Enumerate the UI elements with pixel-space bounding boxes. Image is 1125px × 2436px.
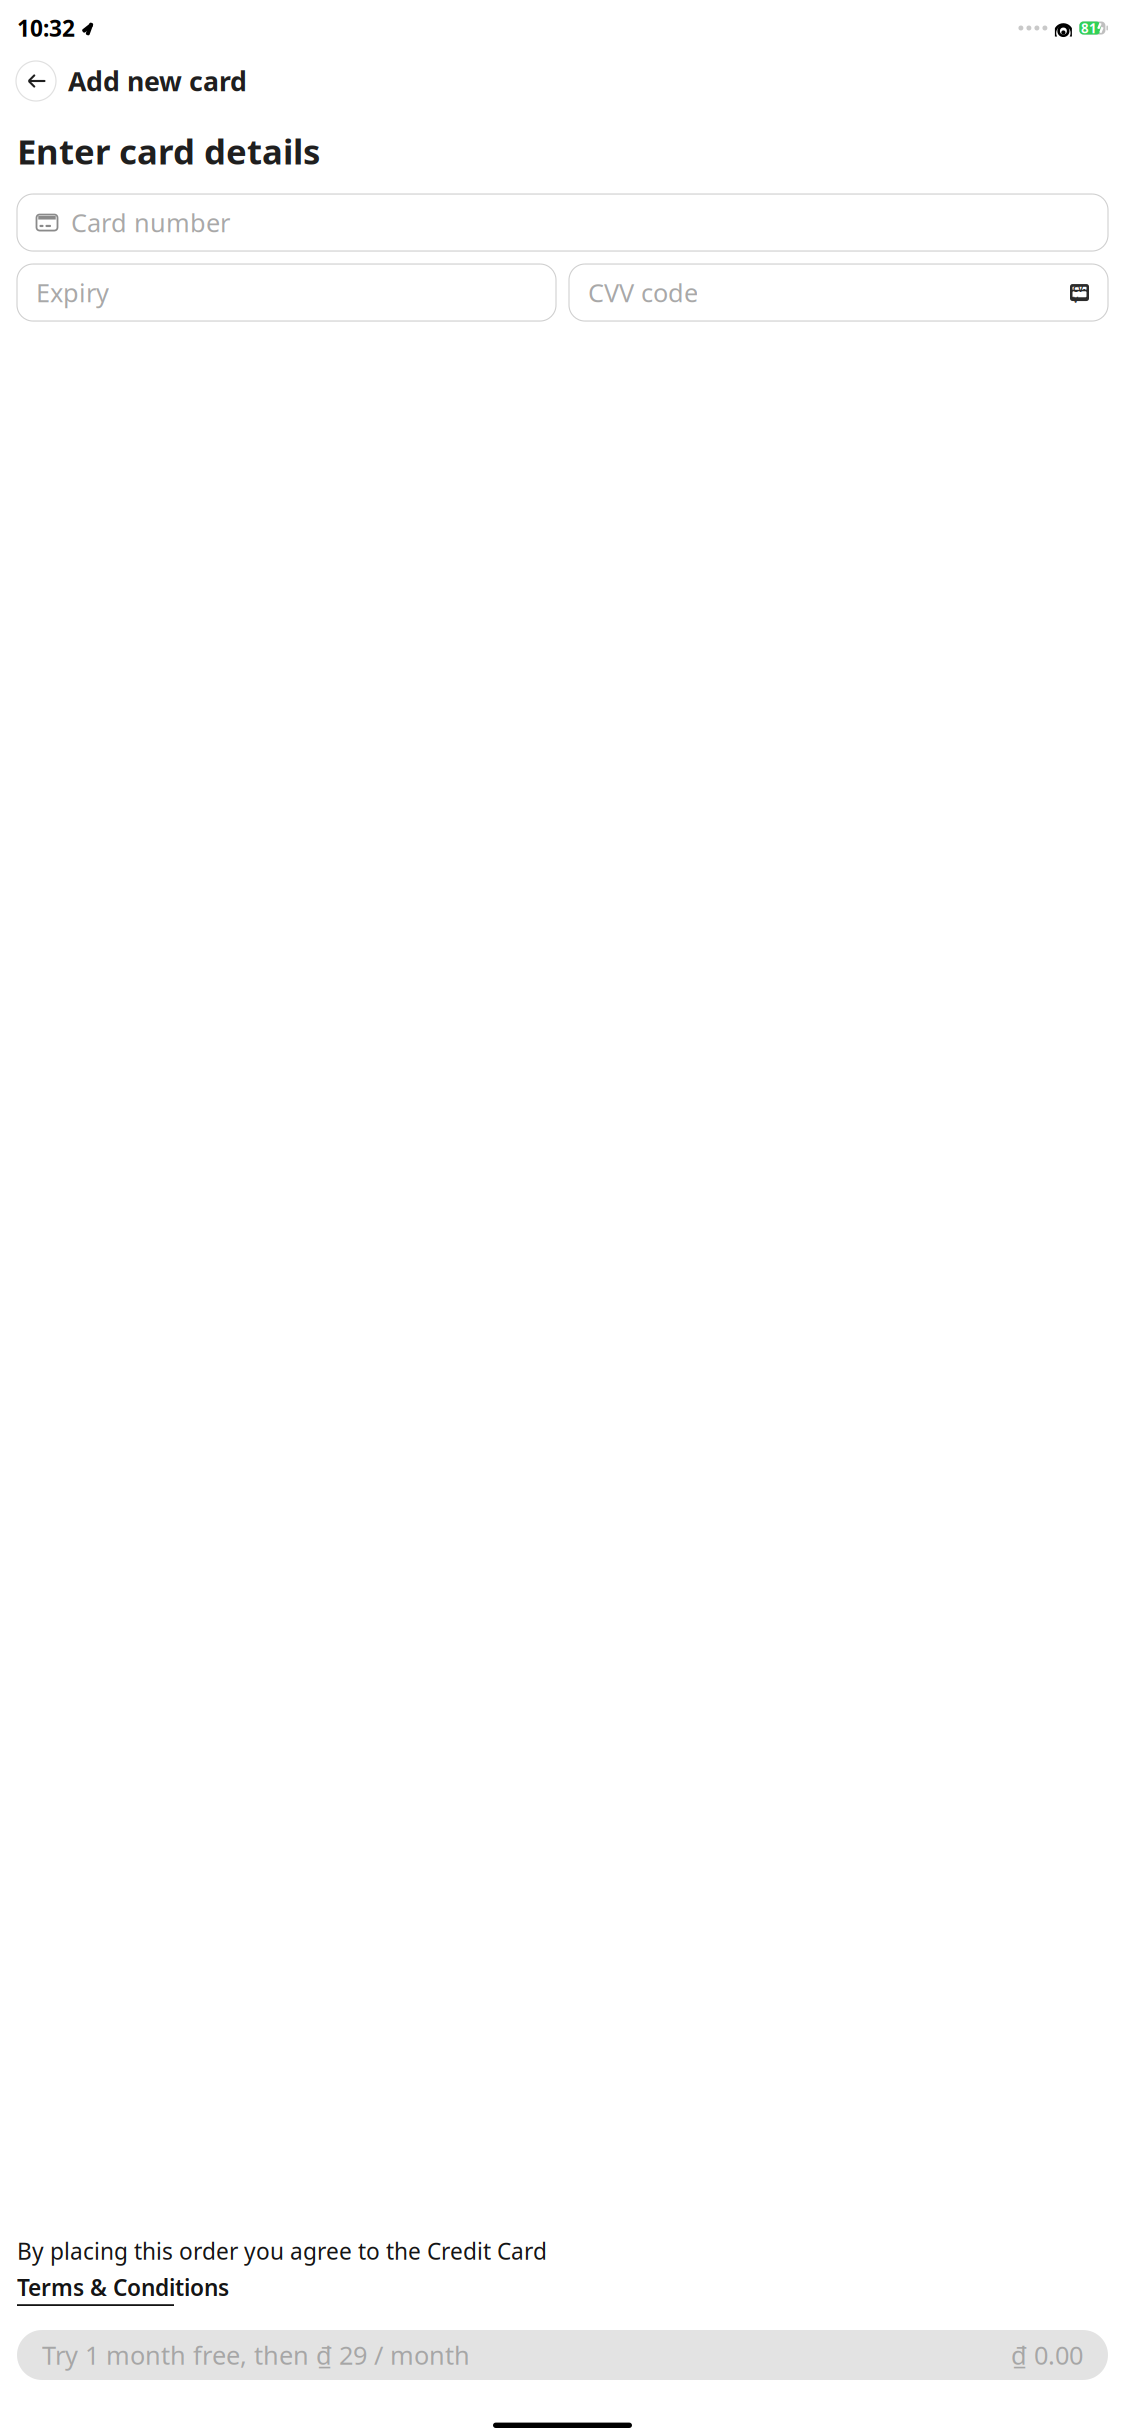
staticText: 81 <box>1081 19 1097 37</box>
staticText: ₫ 0.00 <box>1011 2338 1083 2372</box>
staticText: Terms & Conditions <box>17 2272 229 2302</box>
button[interactable]: Card number <box>17 194 1108 251</box>
staticText: Card number <box>71 206 230 239</box>
staticText: Try 1 month free, then ₫ 29 / month <box>42 2338 470 2372</box>
button[interactable]: Try 1 month free, then ₫ 29 / month <box>17 2330 1108 2380</box>
button[interactable]: Back <box>16 61 56 101</box>
staticText: Add new card <box>68 63 247 99</box>
staticText: CVV code <box>588 276 698 309</box>
staticText: Enter card details <box>17 128 320 174</box>
staticText: CVV <box>1073 284 1086 305</box>
button[interactable]: Terms & Conditions <box>17 2272 229 2306</box>
staticText: 10:32 <box>17 13 75 43</box>
button[interactable]: Add new card <box>68 63 247 99</box>
button[interactable]: CVV code <box>569 264 1108 321</box>
button[interactable]: Expiry <box>17 264 556 321</box>
staticText: Expiry <box>36 276 109 309</box>
staticText: By placing this order you agree to the C… <box>17 2236 547 2266</box>
